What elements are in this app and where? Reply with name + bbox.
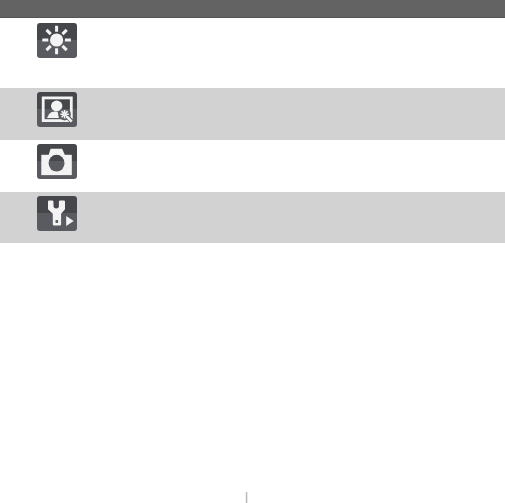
button[interactable]: Photo editor: [37, 92, 77, 127]
button[interactable]: Camera: [0, 140, 505, 192]
button[interactable]: Camera: [37, 144, 77, 179]
button[interactable]: Photo editor: [0, 88, 505, 140]
button[interactable]: Developer tools: [0, 192, 505, 243]
button[interactable]: Developer tools: [37, 196, 77, 231]
button[interactable]: Brightness: [0, 18, 505, 88]
button[interactable]: Brightness: [37, 23, 77, 58]
